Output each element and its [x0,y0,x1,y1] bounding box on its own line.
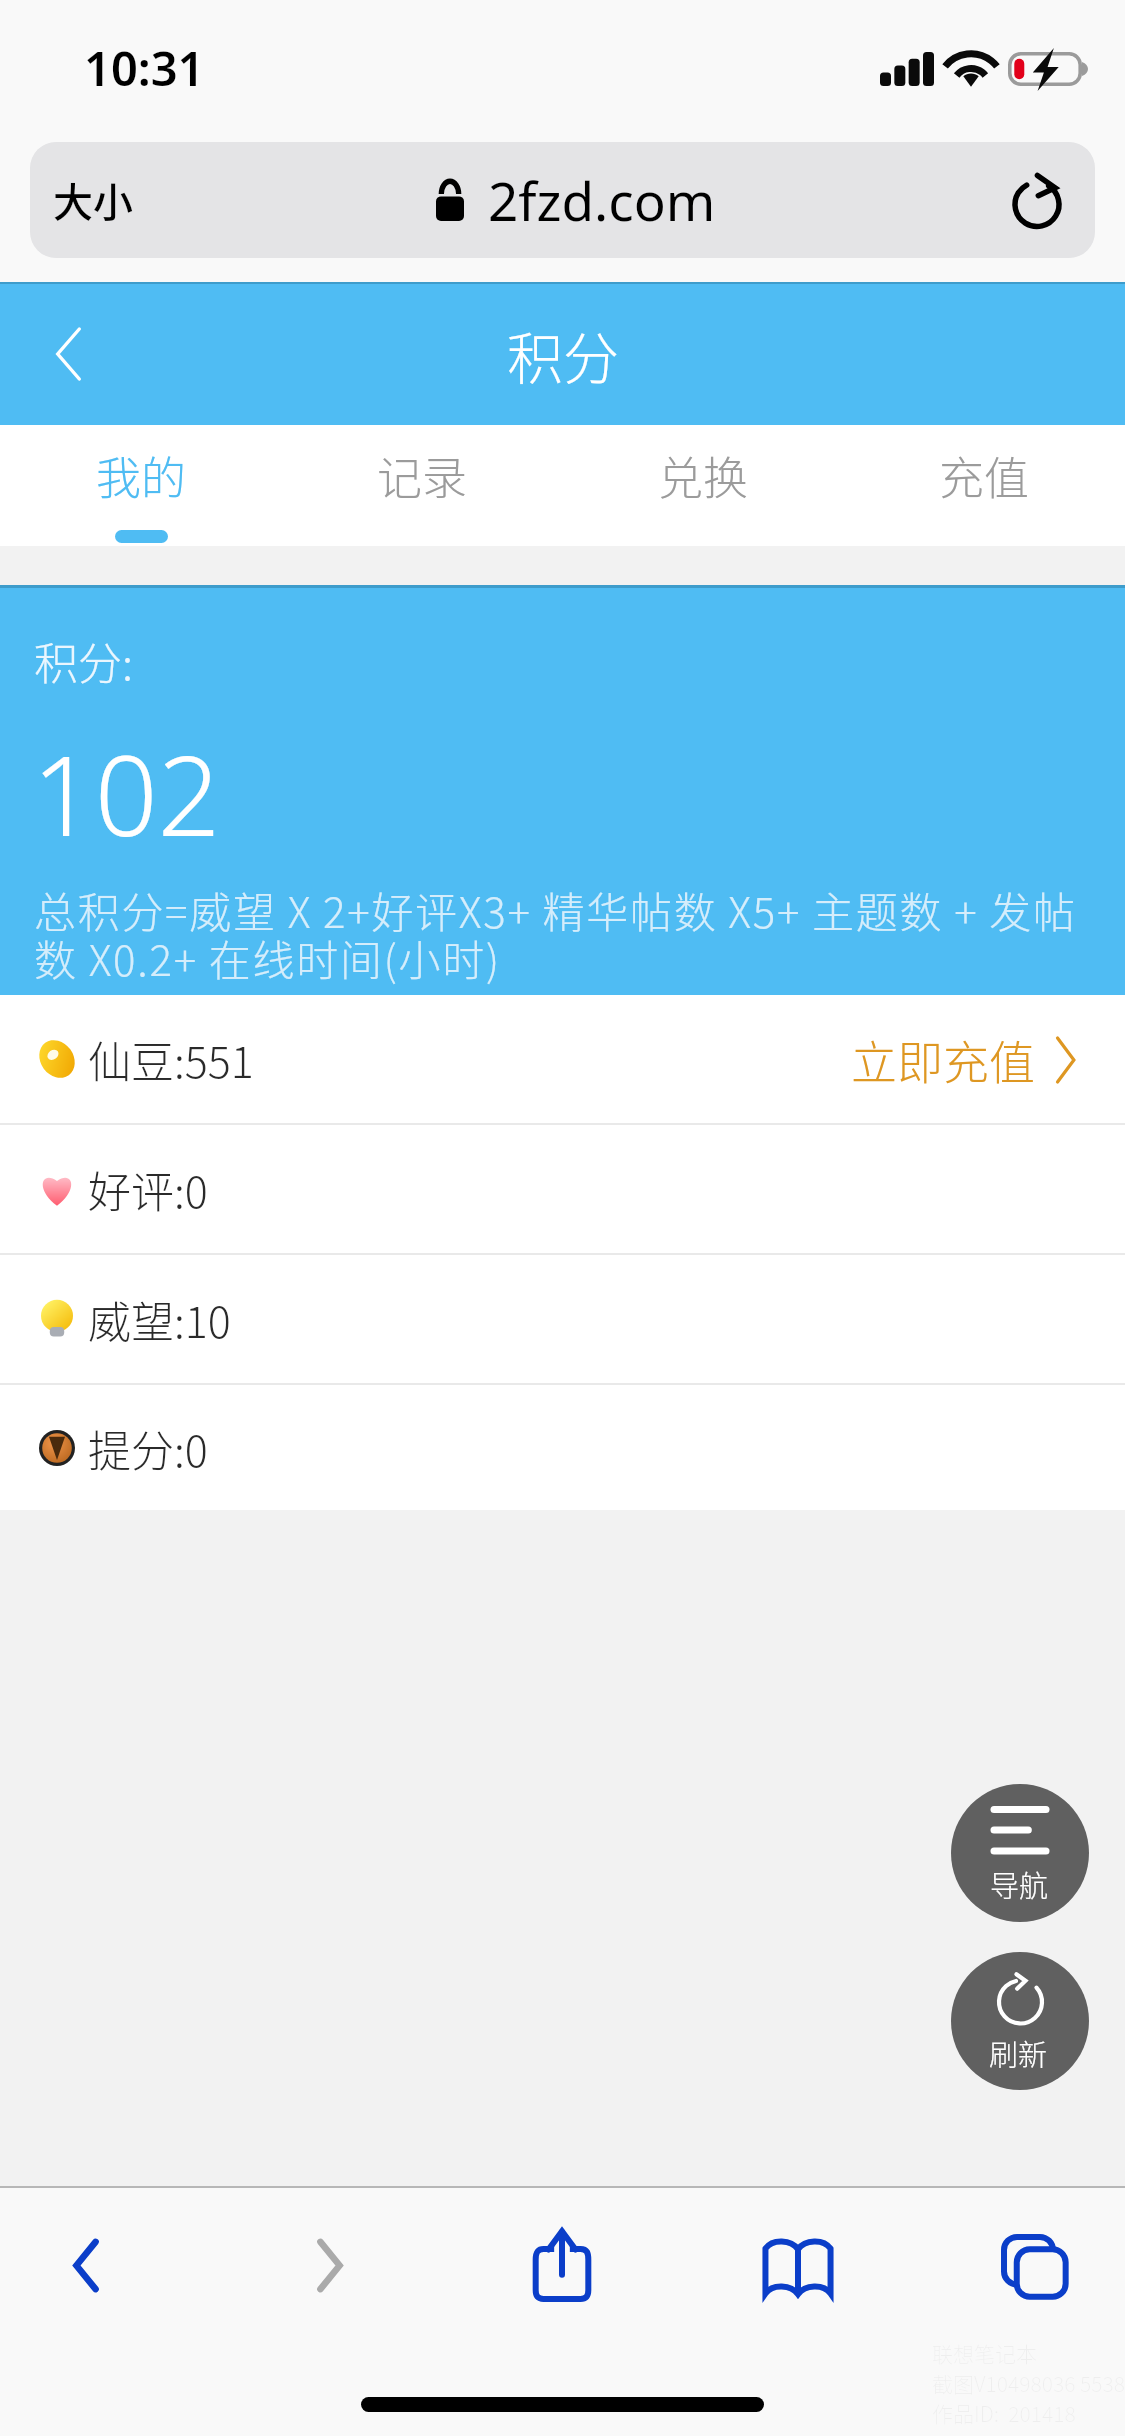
button[interactable]: 导航 [951,1784,1089,1922]
staticText: 102 [32,718,221,868]
button[interactable]: 提分:0 [0,1385,1125,1510]
button[interactable]: 大小 [30,142,1095,258]
button[interactable]: 好评:0 [0,1125,1125,1253]
staticText: 兑换 [658,443,749,508]
staticText: 仙豆:551 [88,1028,254,1090]
button[interactable]: 记录 [282,425,563,546]
button[interactable]: 仙豆:551 [0,995,1125,1123]
staticText: 刷新 [989,2032,1048,2074]
staticText: 好评:0 [88,1158,208,1220]
staticText: 提分:0 [88,1417,208,1479]
button[interactable]: Forward [275,2210,385,2320]
button[interactable]: 兑换 [563,425,844,546]
button[interactable]: 刷新 [951,1952,1089,2090]
staticText: 导航 [990,1863,1049,1905]
button[interactable]: Back [23,309,113,399]
button[interactable]: Reload [1005,168,1069,232]
button[interactable]: Bookmarks [743,2211,853,2321]
staticText: 大小 [53,171,133,229]
button[interactable]: Share [507,2209,617,2319]
button[interactable]: Tabs [979,2211,1089,2321]
staticText: 总积分=威望 X 2+好评X3+ 精华帖数 X5+ 主题数 + 发帖 数 X0.… [34,879,1092,988]
staticText: 威望:10 [88,1288,231,1350]
button[interactable]: Back [31,2210,141,2320]
staticText: 记录 [377,443,468,508]
staticText: 立即充值 [851,1026,1035,1093]
staticText: 充值 [939,443,1030,508]
button[interactable]: 我的 [0,425,282,546]
button[interactable]: 威望:10 [0,1255,1125,1383]
staticText: 积分: [34,629,133,693]
staticText: 10:31 [84,36,205,100]
staticText: 2fzd.com [488,164,716,236]
button[interactable]: 充值 [844,425,1125,546]
staticText: 积分 [507,314,619,395]
staticText: 我的 [96,443,187,508]
